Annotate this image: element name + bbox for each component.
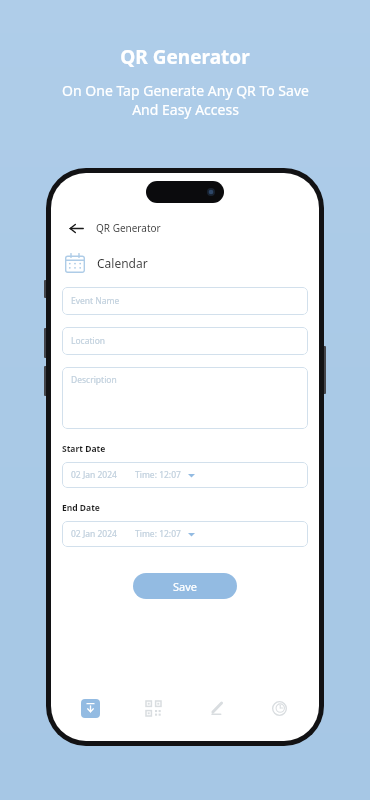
button[interactable]: 02 Jan 2024 <box>62 521 308 547</box>
staticText: Save <box>173 579 198 594</box>
staticText: 02 Jan 2024 <box>71 469 117 481</box>
staticText: Time: 12:07 <box>135 469 181 481</box>
button[interactable]: Create <box>185 691 248 725</box>
staticText: Time: 12:07 <box>135 528 181 540</box>
staticText: QR Generator <box>96 221 161 235</box>
button[interactable]: Save <box>133 573 237 599</box>
button[interactable]: Location <box>62 327 308 355</box>
button[interactable]: 02 Jan 2024 <box>62 462 308 488</box>
staticText: On One Tap Generate Any QR To Save And E… <box>62 81 309 119</box>
staticText: 02 Jan 2024 <box>71 528 117 540</box>
button[interactable]: History <box>248 691 311 725</box>
staticText: End Date <box>62 502 100 514</box>
button[interactable]: Event Name <box>62 287 308 315</box>
staticText: Event Name <box>71 295 120 307</box>
staticText: Location <box>71 335 106 347</box>
button[interactable]: Back <box>63 215 89 241</box>
staticText: QR Generator <box>120 44 250 70</box>
staticText: Description <box>71 374 117 386</box>
button[interactable]: Description <box>62 367 308 429</box>
button[interactable]: QR Code <box>122 691 185 725</box>
staticText: Calendar <box>97 255 148 271</box>
button[interactable]: Downloads <box>59 691 122 725</box>
staticText: Start Date <box>62 443 106 455</box>
